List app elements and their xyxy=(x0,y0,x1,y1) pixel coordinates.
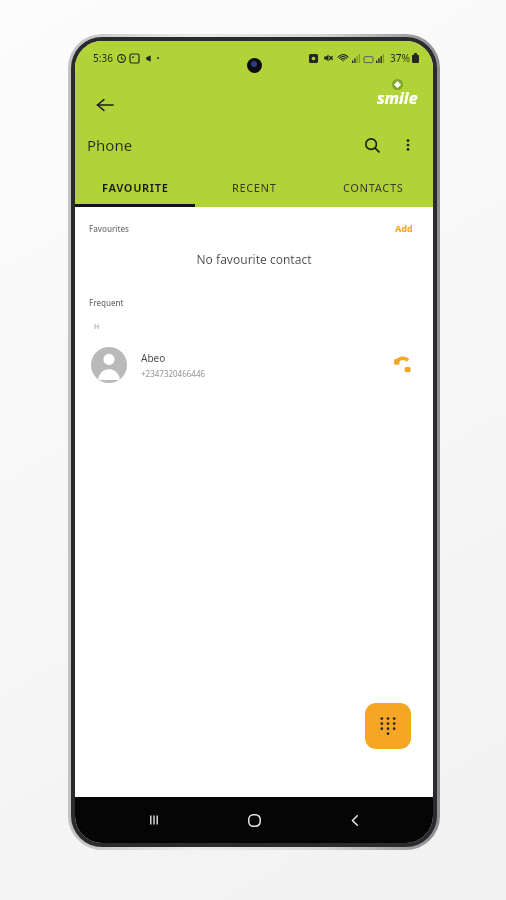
staticText: FAVOURITE xyxy=(102,180,169,195)
button[interactable]: Back xyxy=(85,85,125,125)
button[interactable]: Abeo xyxy=(75,338,433,392)
staticText: H xyxy=(94,322,100,332)
staticText: Favourites xyxy=(89,223,130,234)
button[interactable]: RECENT xyxy=(195,167,314,207)
button[interactable]: Search xyxy=(353,126,391,164)
staticText: 5:36 xyxy=(93,51,113,65)
button[interactable]: Back xyxy=(333,798,377,842)
staticText: smile xyxy=(377,87,418,109)
button[interactable]: More options xyxy=(391,128,425,162)
button[interactable]: Call Abeo xyxy=(385,348,419,382)
button[interactable]: FAVOURITE xyxy=(75,167,195,207)
staticText: Add xyxy=(395,222,413,234)
staticText: RECENT xyxy=(232,180,277,195)
button[interactable]: CONTACTS xyxy=(314,167,433,207)
staticText: Abeo xyxy=(141,351,166,365)
staticText: Frequent xyxy=(89,297,124,308)
button[interactable]: Home xyxy=(232,798,276,842)
staticText: Phone xyxy=(87,135,133,155)
staticText: 37% xyxy=(390,51,410,65)
button[interactable]: Dial pad xyxy=(365,703,411,749)
staticText: +2347320466446 xyxy=(141,368,206,379)
button[interactable]: Recent apps xyxy=(132,798,176,842)
staticText: CONTACTS xyxy=(343,180,404,195)
button[interactable]: Add xyxy=(391,219,417,237)
staticText: No favourite contact xyxy=(75,251,433,267)
